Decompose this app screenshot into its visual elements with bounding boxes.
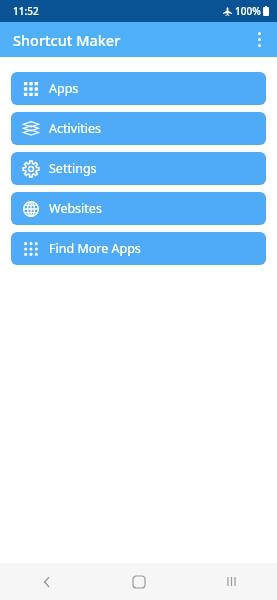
- button[interactable]: Websites: [11, 192, 266, 225]
- staticText: Find More Apps: [49, 240, 141, 257]
- button[interactable]: Apps: [11, 72, 266, 105]
- button[interactable]: Find More Apps: [11, 232, 266, 265]
- button[interactable]: Recent apps: [185, 563, 277, 600]
- button[interactable]: Activities: [11, 112, 266, 145]
- button[interactable]: Settings: [11, 152, 266, 185]
- staticText: Shortcut Maker: [13, 30, 121, 50]
- staticText: Activities: [49, 120, 102, 137]
- staticText: 100%: [235, 4, 261, 18]
- staticText: 11:52: [13, 4, 39, 18]
- staticText: Websites: [49, 200, 102, 217]
- button[interactable]: Back: [0, 563, 93, 600]
- staticText: Apps: [49, 80, 79, 97]
- button[interactable]: More options: [241, 22, 277, 57]
- button[interactable]: Home: [93, 563, 185, 600]
- staticText: Settings: [49, 160, 97, 177]
